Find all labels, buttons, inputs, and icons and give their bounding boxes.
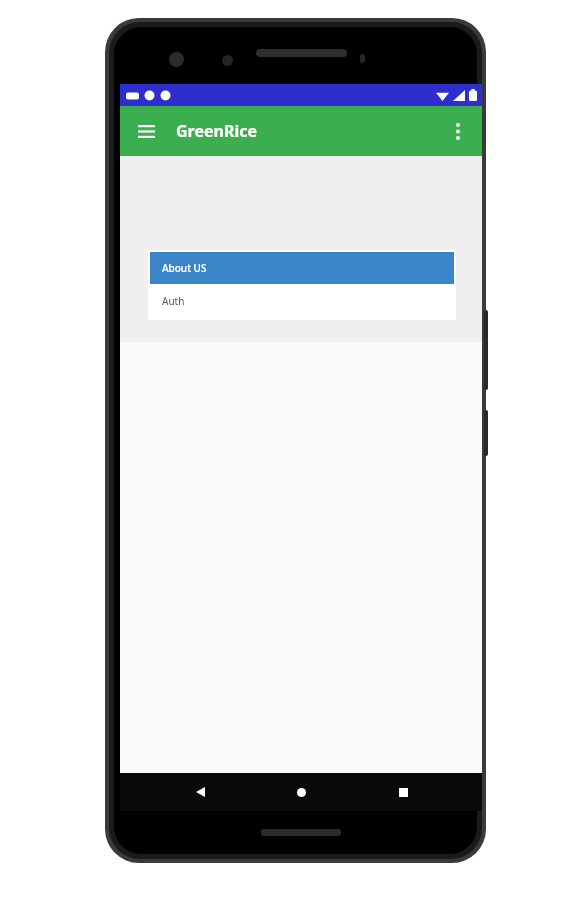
staticText: About US	[162, 261, 207, 275]
button[interactable]: Open navigation menu	[128, 113, 164, 149]
button[interactable]: About US	[150, 252, 454, 284]
button[interactable]: Back	[178, 773, 222, 811]
staticText: GreenRice	[176, 120, 258, 142]
button[interactable]: Home	[279, 773, 323, 811]
button[interactable]: More options	[440, 113, 476, 149]
staticText: Auth	[162, 294, 185, 308]
button[interactable]: Recent apps	[381, 773, 425, 811]
button[interactable]: Auth	[148, 284, 456, 318]
